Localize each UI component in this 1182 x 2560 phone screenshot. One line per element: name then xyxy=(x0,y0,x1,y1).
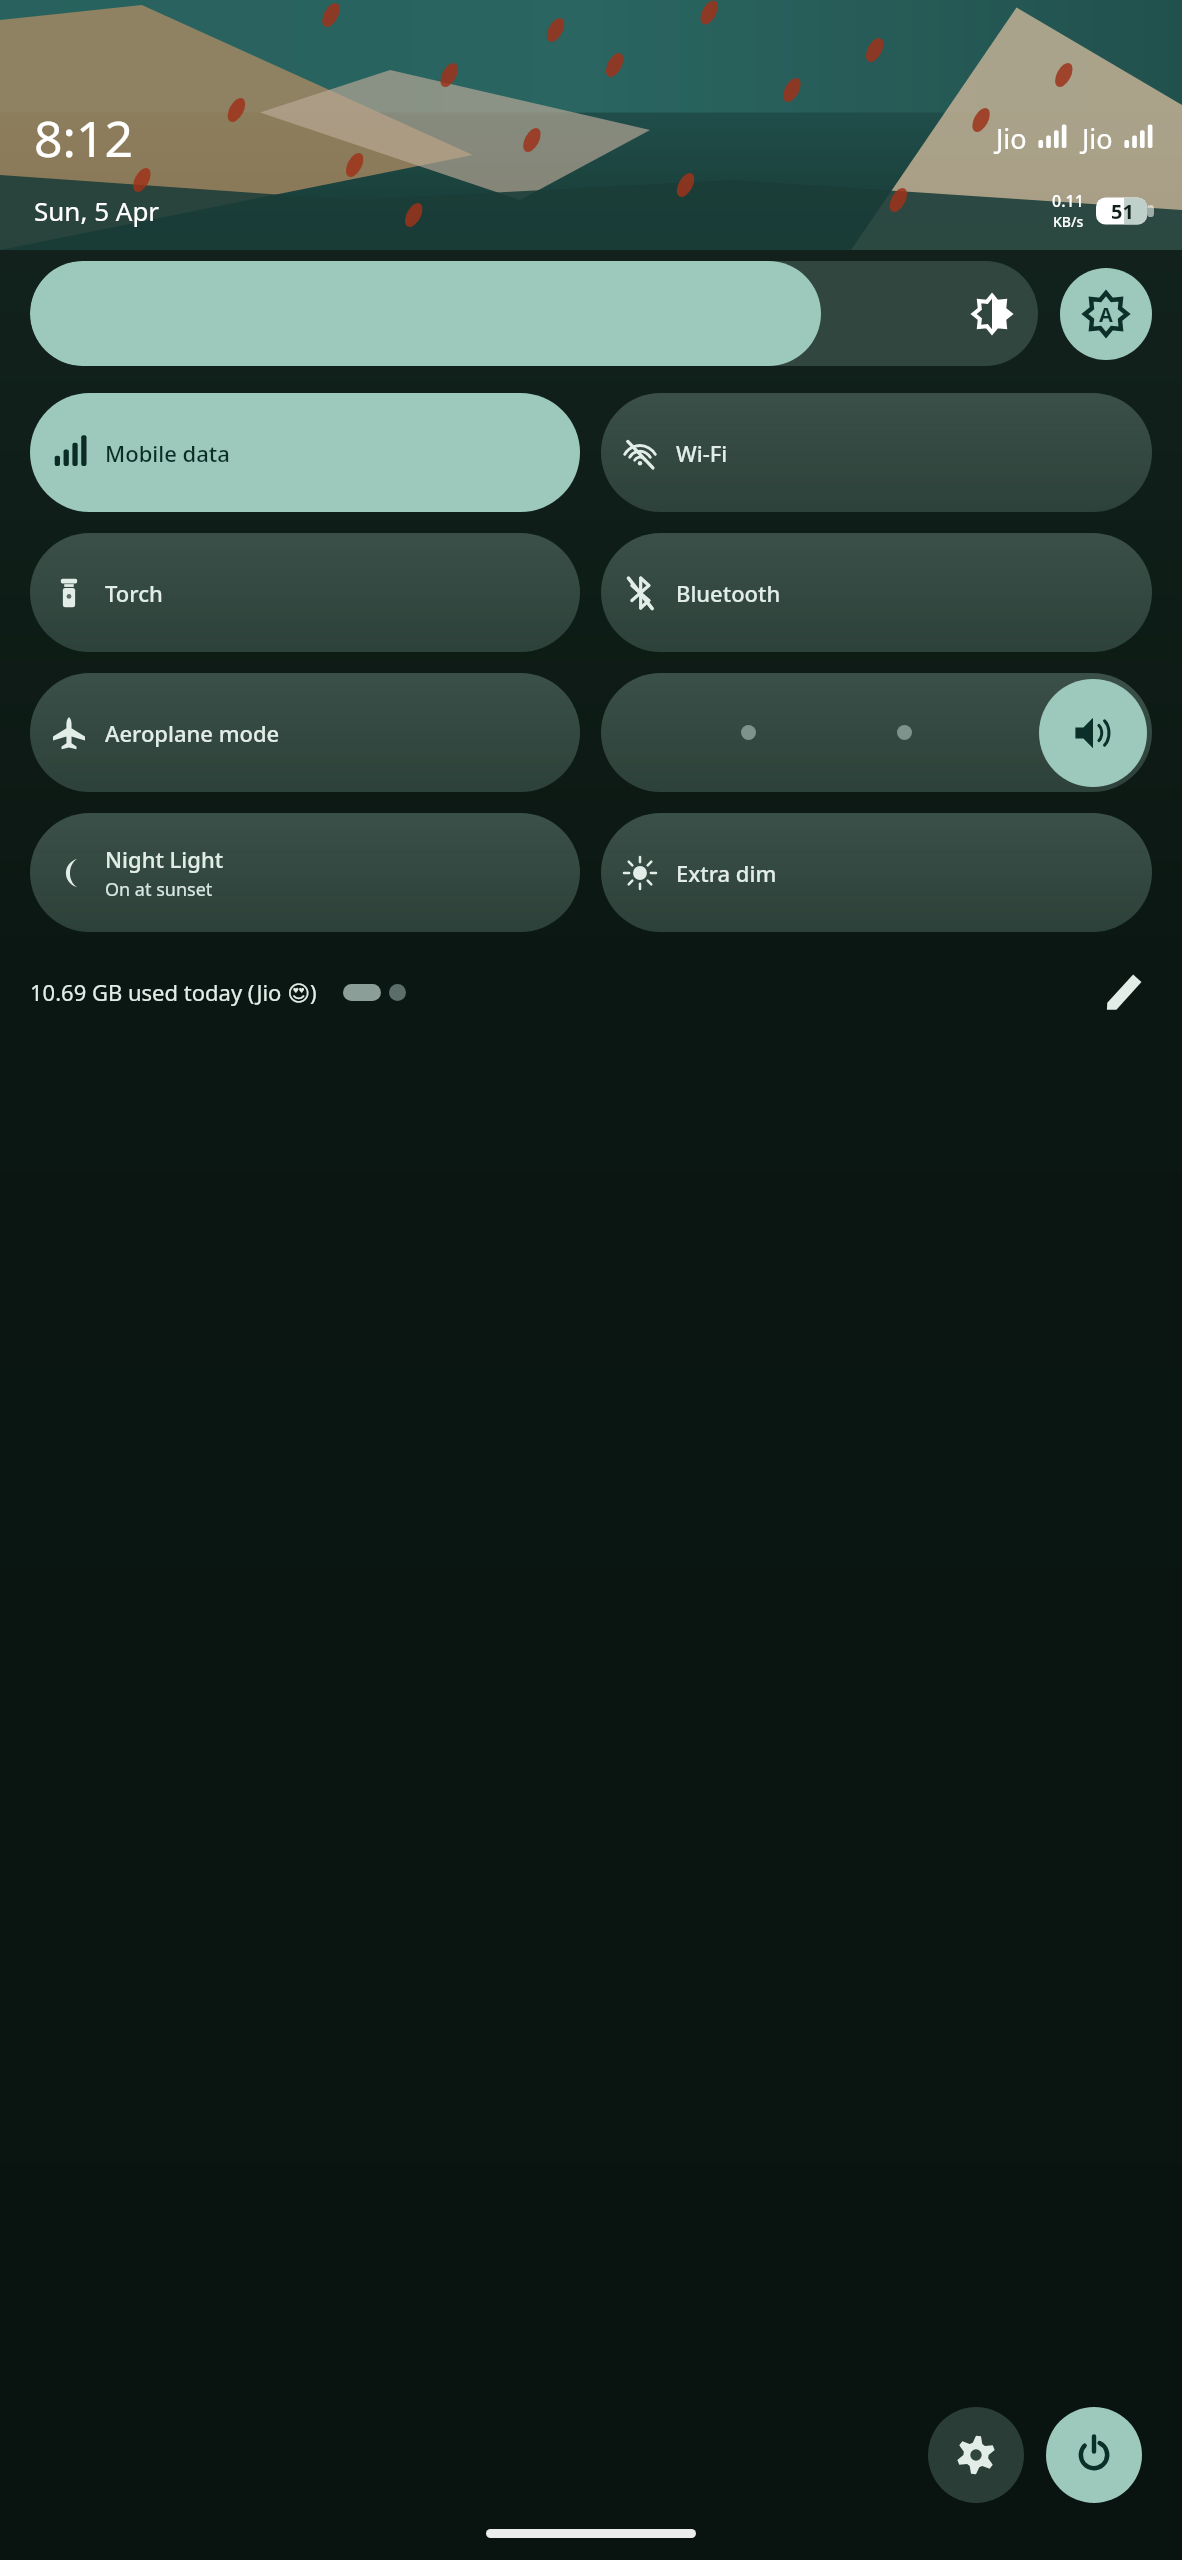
button[interactable]: Brightness xyxy=(30,261,1038,366)
button[interactable]: Bluetooth xyxy=(601,533,1152,652)
button[interactable]: Ring mode: sound on xyxy=(601,673,1152,792)
staticText: Aeroplane mode xyxy=(105,718,280,748)
staticText: 8:12 xyxy=(34,104,134,172)
button[interactable]: Extra dim xyxy=(601,813,1152,932)
button[interactable]: Power xyxy=(1046,2407,1142,2503)
button[interactable]: 10.69 GB used today (Jio 😍) xyxy=(30,977,317,1007)
staticText: 51 xyxy=(1111,198,1134,225)
staticText: Mobile data xyxy=(105,438,230,468)
staticText: Sun, 5 Apr xyxy=(34,193,160,228)
staticText: 0.11 xyxy=(1052,190,1084,212)
button[interactable]: Edit tiles xyxy=(1098,966,1150,1018)
button[interactable]: Settings xyxy=(928,2407,1024,2503)
staticText: Torch xyxy=(105,578,163,608)
staticText: Jio xyxy=(1082,120,1113,157)
staticText: On at sunset xyxy=(105,877,213,902)
staticText: Jio xyxy=(996,120,1027,157)
staticText: A xyxy=(1099,301,1113,328)
staticText: Extra dim xyxy=(676,858,777,888)
button[interactable]: Night Light xyxy=(30,813,580,932)
staticText: Bluetooth xyxy=(676,578,781,608)
button[interactable]: Mobile data xyxy=(30,393,580,512)
staticText: Wi-Fi xyxy=(676,438,728,468)
button[interactable]: Auto brightness xyxy=(1060,268,1152,360)
staticText: KB/s xyxy=(1053,212,1084,231)
button[interactable]: Torch xyxy=(30,533,580,652)
button[interactable]: Aeroplane mode xyxy=(30,673,580,792)
button[interactable]: Wi-Fi xyxy=(601,393,1152,512)
staticText: Night Light xyxy=(105,844,224,874)
